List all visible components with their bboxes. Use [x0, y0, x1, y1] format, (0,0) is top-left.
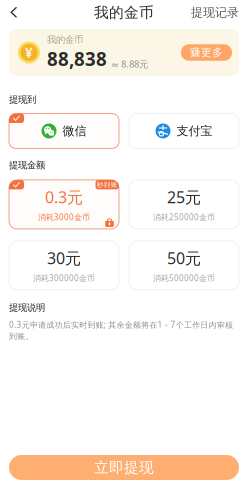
- staticText: 0.3元申请成功后实时到账; 其余金额将在1 - 7个工作日内审核: [9, 319, 233, 330]
- staticText: 提现金额: [9, 159, 45, 171]
- button[interactable]: 立即提现: [9, 455, 239, 480]
- staticText: 支付宝: [176, 124, 212, 138]
- staticText: 微信: [62, 124, 86, 138]
- staticText: 立即提现: [94, 458, 154, 476]
- staticText: ≈ 8.88元: [111, 58, 148, 70]
- staticText: 提现记录: [191, 5, 239, 20]
- staticText: 提现说明: [9, 302, 45, 313]
- staticText: 我的金币: [94, 3, 154, 21]
- staticText: 消耗500000金币: [153, 273, 215, 283]
- button[interactable]: 提现记录: [182, 0, 248, 25]
- staticText: 秒到账: [97, 181, 118, 189]
- staticText: 到账。: [9, 331, 33, 341]
- staticText: 50元: [167, 247, 201, 269]
- staticText: 赚更多: [190, 46, 223, 59]
- button[interactable]: 返回: [0, 0, 28, 25]
- staticText: ¥: [25, 44, 33, 61]
- button[interactable]: 30元: [9, 241, 119, 290]
- staticText: 88,838: [47, 46, 107, 71]
- button[interactable]: 支付宝: [129, 113, 239, 148]
- staticText: 25元: [167, 186, 201, 208]
- button[interactable]: 赚更多: [181, 44, 232, 61]
- staticText: 消耗300000金币: [33, 273, 95, 283]
- staticText: 0.3元: [45, 186, 83, 208]
- staticText: 提现到: [9, 94, 36, 105]
- staticText: 30元: [47, 247, 81, 269]
- button[interactable]: 微信: [9, 113, 119, 148]
- button[interactable]: 50元: [129, 241, 239, 290]
- staticText: 消耗250000金币: [153, 212, 215, 222]
- staticText: 消耗3000金币: [38, 212, 90, 222]
- button[interactable]: 25元: [129, 180, 239, 229]
- button[interactable]: 0.3元: [9, 180, 119, 229]
- staticText: 我的金币: [47, 34, 83, 45]
